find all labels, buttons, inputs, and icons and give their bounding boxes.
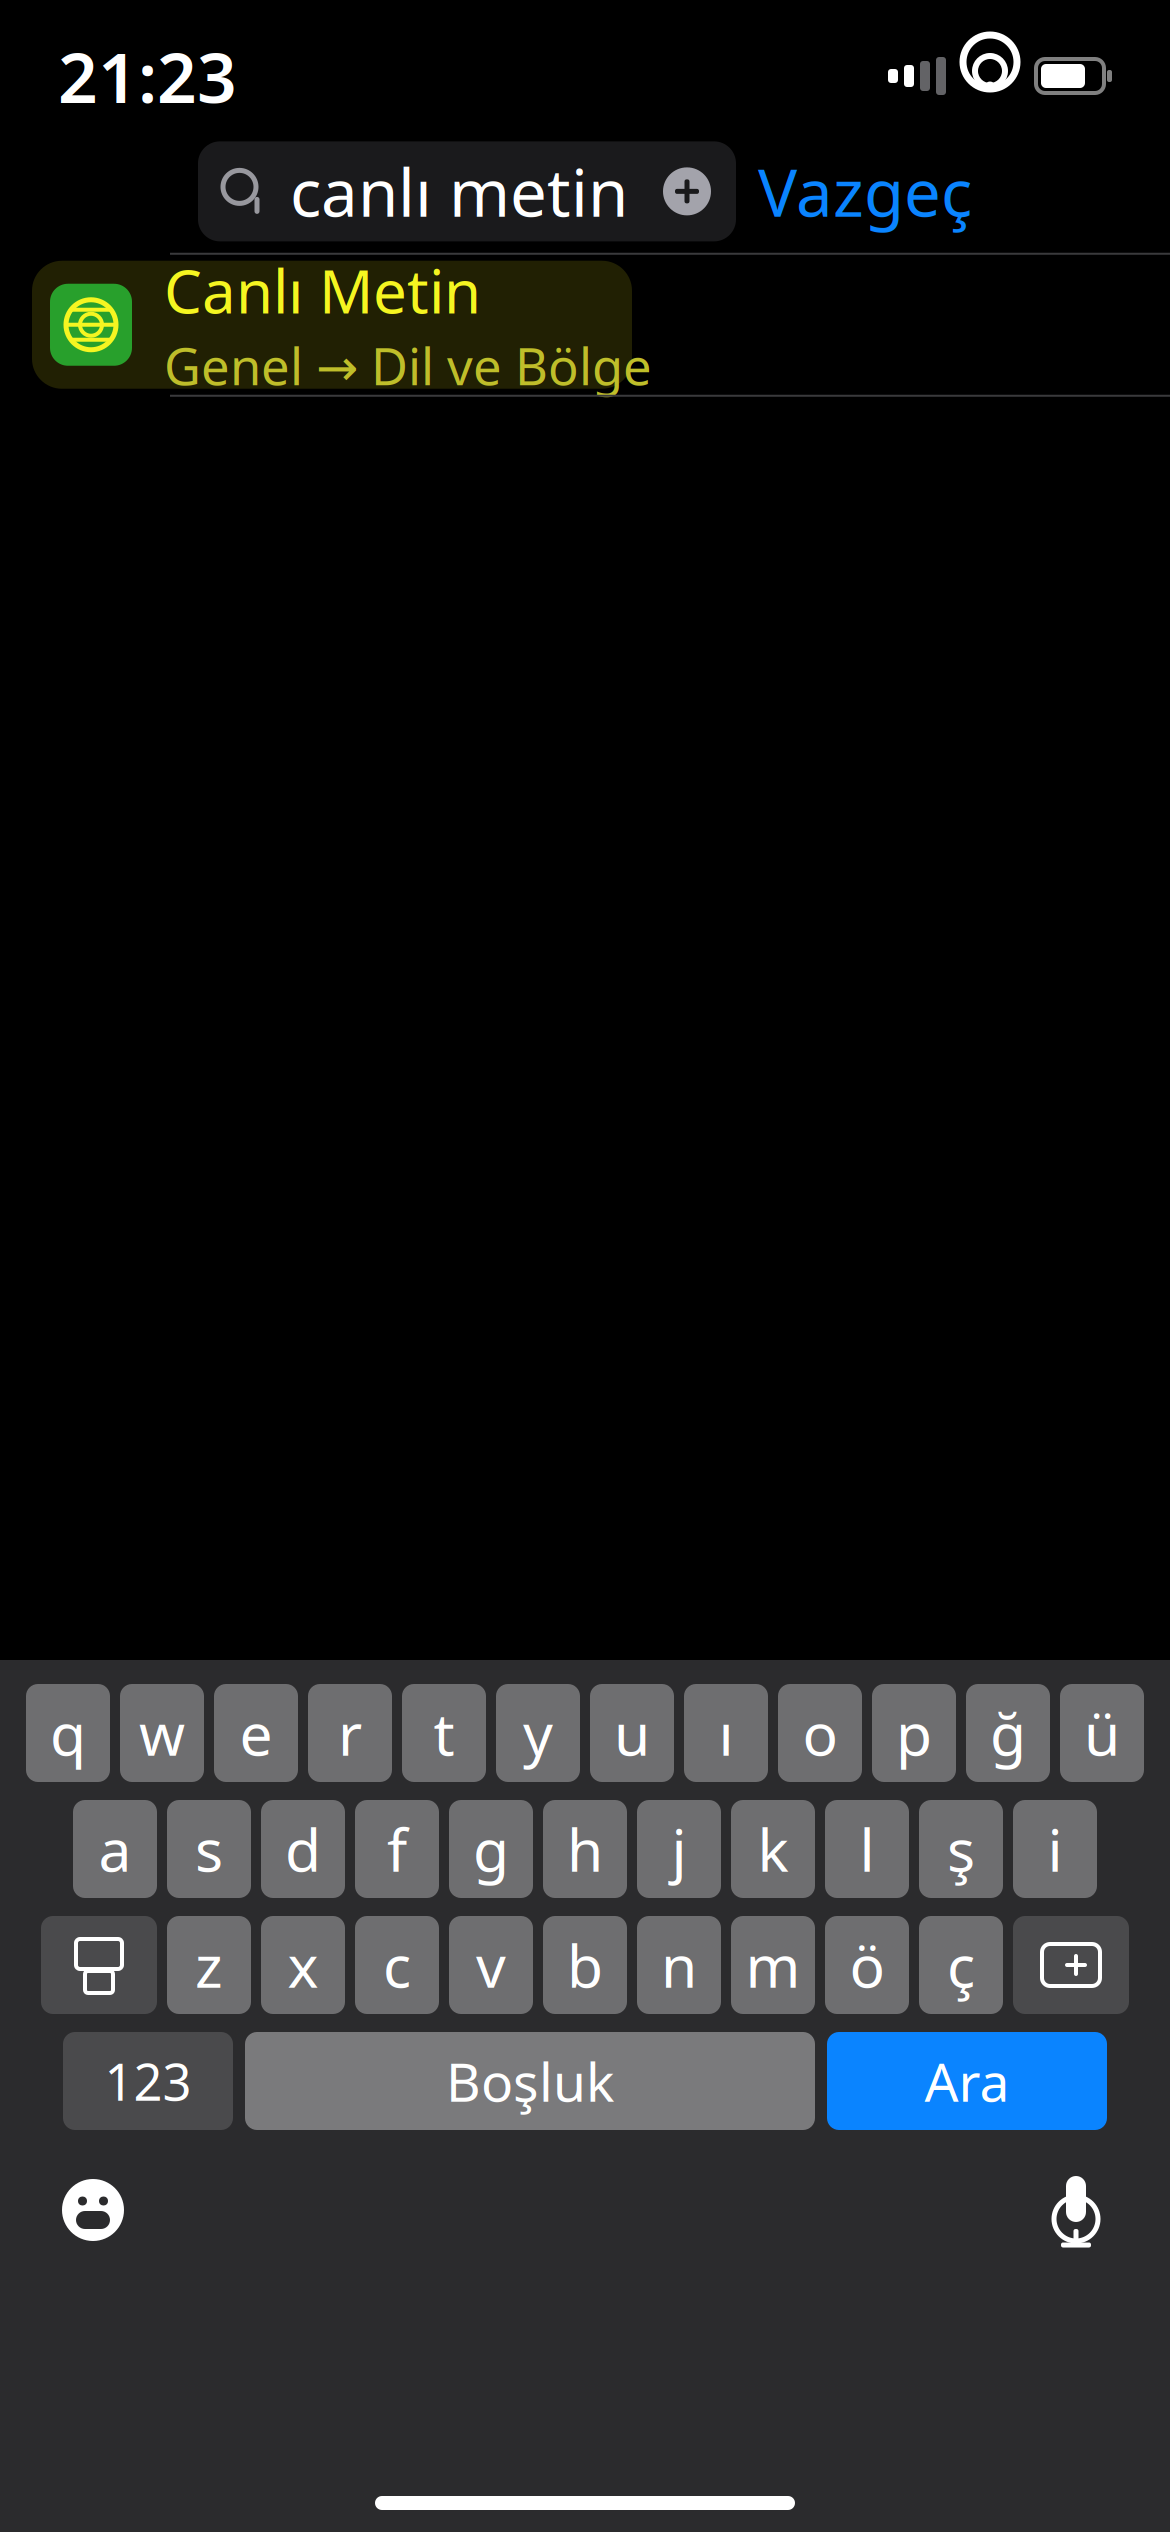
button[interactable]: t [402,1684,486,1782]
staticText: Ara [924,2046,1009,2116]
button[interactable]: Ara [827,2032,1107,2130]
staticText: Genel → Dil ve Bölge [164,332,652,399]
staticText: q [50,1694,86,1772]
button[interactable]: g [449,1800,533,1898]
button[interactable]: ç [919,1916,1003,2014]
button[interactable]: ğ [966,1684,1050,1782]
staticText: d [285,1810,321,1888]
button[interactable]: ş [919,1800,1003,1898]
staticText: ü [1084,1694,1120,1772]
button[interactable]: s [167,1800,251,1898]
button[interactable]: Canlı Metin [0,255,1170,395]
button[interactable]: Vazgeç [736,132,994,251]
staticText: p [896,1694,932,1772]
button[interactable]: Dikte [1024,2154,1128,2266]
staticText: x [287,1926,318,2004]
staticText: r [338,1694,362,1772]
button[interactable]: o [778,1684,862,1782]
staticText: u [614,1694,650,1772]
button[interactable]: ü [1060,1684,1144,1782]
button[interactable]: w [120,1684,204,1782]
button[interactable]: n [637,1916,721,2014]
button[interactable]: ı [684,1684,768,1782]
staticText: v [476,1926,506,2004]
staticText: m [745,1926,800,2004]
staticText: y [523,1694,553,1772]
button[interactable]: q [26,1684,110,1782]
button[interactable]: Emoji [38,2163,148,2257]
button[interactable]: y [496,1684,580,1782]
staticText: canlı metin [290,148,628,235]
staticText: o [802,1694,837,1772]
staticText: k [757,1810,788,1888]
button[interactable]: Metni sil [650,154,724,228]
button[interactable]: Boşluk [245,2032,815,2130]
staticText: ö [849,1926,884,2004]
staticText: h [567,1810,603,1888]
button[interactable]: 123 [63,2032,233,2130]
button[interactable]: ö [825,1916,909,2014]
staticText: ç [947,1926,975,2004]
button[interactable]: v [449,1916,533,2014]
staticText: g [473,1810,509,1888]
button[interactable]: l [825,1800,909,1898]
staticText: w [139,1694,185,1772]
button[interactable]: z [167,1916,251,2014]
button[interactable]: r [308,1684,392,1782]
button[interactable]: Sil [1013,1916,1129,2014]
staticText: z [195,1926,223,2004]
button[interactable]: h [543,1800,627,1898]
staticText: n [661,1926,697,2004]
button[interactable]: x [261,1916,345,2014]
staticText: ğ [990,1694,1026,1772]
button[interactable]: j [637,1800,721,1898]
button[interactable]: Shift [41,1916,157,2014]
staticText: i [1047,1810,1062,1888]
staticText: c [383,1926,411,2004]
staticText: a [98,1810,131,1888]
staticText: ı [718,1694,733,1772]
button[interactable]: u [590,1684,674,1782]
button[interactable]: c [355,1916,439,2014]
staticText: l [859,1810,874,1888]
button[interactable]: p [872,1684,956,1782]
staticText: Boşluk [446,2046,614,2116]
staticText: 21:23 [58,30,237,122]
staticText: j [671,1810,686,1888]
staticText: b [567,1926,603,2004]
staticText: 123 [104,2047,191,2115]
staticText: s [195,1810,223,1888]
staticText: t [433,1694,454,1772]
staticText: Canlı Metin [164,250,481,330]
button[interactable]: d [261,1800,345,1898]
button[interactable]: k [731,1800,815,1898]
button[interactable]: e [214,1684,298,1782]
staticText: Vazgeç [758,148,972,235]
button[interactable]: m [731,1916,815,2014]
button[interactable]: i [1013,1800,1097,1898]
staticText: ş [947,1810,975,1888]
staticText: e [239,1694,272,1772]
button[interactable]: a [73,1800,157,1898]
staticText: f [387,1810,407,1888]
button[interactable]: b [543,1916,627,2014]
button[interactable]: f [355,1800,439,1898]
